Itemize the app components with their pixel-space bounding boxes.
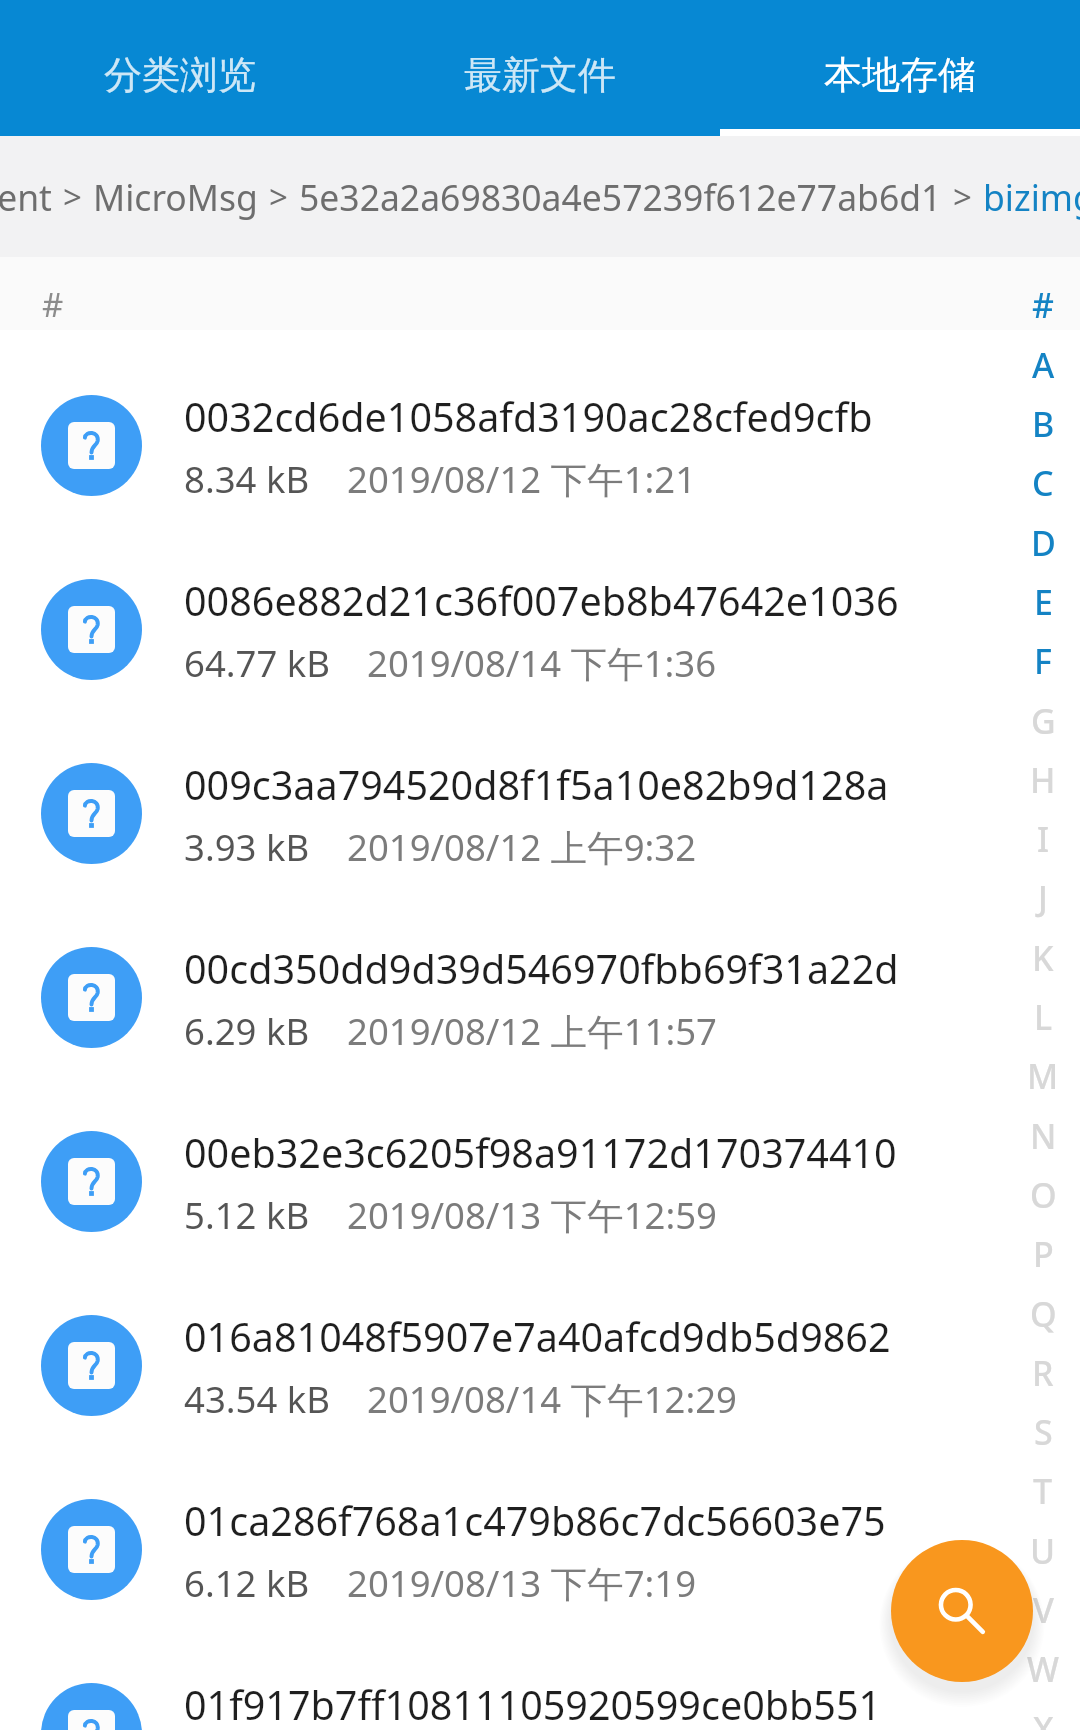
button[interactable]: L <box>1013 987 1073 1046</box>
staticText: B <box>1032 401 1055 447</box>
staticText: # <box>42 282 64 327</box>
staticText: > <box>953 174 972 219</box>
staticText: D <box>1031 520 1056 566</box>
staticText: 分类浏览 <box>104 51 256 99</box>
staticText: J <box>1038 875 1048 921</box>
button[interactable]: 01ca286f768a1c479b86c7dc56603e75 <box>0 1457 1080 1641</box>
button[interactable]: B <box>1013 394 1073 453</box>
button[interactable]: S <box>1013 1402 1073 1461</box>
staticText: 2019/08/13 下午7:19 <box>347 1558 697 1608</box>
staticText: M <box>1027 1053 1059 1099</box>
staticText: 5.12 kB <box>184 1190 310 1240</box>
button[interactable]: 00cd350dd9d39d546970fbb69f31a22d <box>0 905 1080 1089</box>
button[interactable]: T <box>1013 1461 1073 1520</box>
button[interactable]: X <box>1013 1699 1073 1730</box>
staticText: U <box>1030 1528 1056 1574</box>
button[interactable]: O <box>1013 1165 1073 1224</box>
button[interactable]: 01f917b7ff10811105920599ce0bb551 <box>0 1641 1080 1730</box>
staticText: V <box>1033 1587 1054 1633</box>
button[interactable]: 5e32a2a69830a4e57239f612e77ab6d1 <box>299 136 942 257</box>
button[interactable]: V <box>1013 1580 1073 1639</box>
staticText: 00cd350dd9d39d546970fbb69f31a22d <box>184 942 899 996</box>
staticText: H <box>1030 757 1056 803</box>
staticText: R <box>1032 1350 1054 1396</box>
staticText: Q <box>1030 1291 1057 1337</box>
staticText: > <box>269 174 288 219</box>
staticText: 2019/08/14 下午12:29 <box>367 1374 737 1424</box>
button[interactable]: J <box>1013 868 1073 927</box>
button[interactable]: 最新文件 <box>360 0 720 136</box>
staticText: C <box>1032 460 1054 506</box>
staticText: I <box>1037 816 1050 862</box>
button[interactable]: R <box>1013 1343 1073 1402</box>
staticText: 016a81048f5907e7a40afcd9db5d9862 <box>184 1310 891 1364</box>
staticText: W <box>1027 1646 1059 1692</box>
button[interactable]: C <box>1013 453 1073 512</box>
button[interactable]: # <box>1013 275 1073 334</box>
staticText: S <box>1034 1409 1053 1455</box>
staticText: 6.12 kB <box>184 1558 310 1608</box>
button[interactable]: P <box>1013 1224 1073 1283</box>
button[interactable]: 分类浏览 <box>0 0 360 136</box>
staticText: 8.34 kB <box>184 454 310 504</box>
staticText: 最新文件 <box>464 51 616 99</box>
staticText: G <box>1031 698 1056 744</box>
button[interactable]: E <box>1013 572 1073 631</box>
staticText: T <box>1033 1468 1053 1514</box>
button[interactable]: MicroMsg <box>93 136 258 257</box>
staticText: > <box>63 174 82 219</box>
button[interactable]: G <box>1013 691 1073 750</box>
button[interactable]: W <box>1013 1639 1073 1698</box>
button[interactable]: U <box>1013 1521 1073 1580</box>
staticText: O <box>1030 1172 1057 1218</box>
button[interactable]: 0032cd6de1058afd3190ac28cfed9cfb <box>0 353 1080 537</box>
staticText: N <box>1030 1113 1057 1159</box>
button[interactable]: F <box>1013 631 1073 690</box>
staticText: 5e32a2a69830a4e57239f612e77ab6d1 <box>299 173 942 221</box>
staticText: Recent <box>0 173 52 221</box>
button[interactable]: Q <box>1013 1284 1073 1343</box>
button[interactable]: I <box>1013 809 1073 868</box>
staticText: E <box>1034 579 1053 625</box>
staticText: 0032cd6de1058afd3190ac28cfed9cfb <box>184 390 873 444</box>
staticText: 2019/08/12 下午1:21 <box>347 454 697 504</box>
staticText: 2019/08/13 下午12:59 <box>347 1190 717 1240</box>
button[interactable]: 本地存储 <box>720 0 1080 136</box>
button[interactable]: K <box>1013 928 1073 987</box>
staticText: 2019/08/14 下午1:36 <box>367 638 717 688</box>
staticText: P <box>1033 1231 1054 1277</box>
staticText: 43.54 kB <box>184 1374 330 1424</box>
button[interactable]: bizimg <box>983 136 1080 257</box>
button[interactable]: 016a81048f5907e7a40afcd9db5d9862 <box>0 1273 1080 1457</box>
staticText: 2019/08/12 上午9:32 <box>347 822 697 872</box>
button[interactable]: Search <box>891 1540 1033 1682</box>
staticText: 01ca286f768a1c479b86c7dc56603e75 <box>184 1494 886 1548</box>
staticText: 3.93 kB <box>184 822 310 872</box>
staticText: bizimg <box>983 173 1080 221</box>
staticText: X <box>1033 1706 1054 1730</box>
button[interactable]: H <box>1013 750 1073 809</box>
button[interactable]: D <box>1013 513 1073 572</box>
button[interactable]: A <box>1013 335 1073 394</box>
staticText: A <box>1032 342 1055 388</box>
button[interactable]: 009c3aa794520d8f1f5a10e82b9d128a <box>0 721 1080 905</box>
staticText: 0086e882d21c36f007eb8b47642e1036 <box>184 574 899 628</box>
staticText: 6.29 kB <box>184 1006 310 1056</box>
staticText: L <box>1034 994 1053 1040</box>
staticText: K <box>1032 935 1054 981</box>
staticText: 2019/08/12 上午11:57 <box>347 1006 717 1056</box>
button[interactable]: Recent <box>0 136 52 257</box>
staticText: 009c3aa794520d8f1f5a10e82b9d128a <box>184 758 889 812</box>
staticText: 01f917b7ff10811105920599ce0bb551 <box>184 1678 882 1730</box>
staticText: MicroMsg <box>93 173 258 221</box>
button[interactable]: 00eb32e3c6205f98a91172d170374410 <box>0 1089 1080 1273</box>
button[interactable]: M <box>1013 1046 1073 1105</box>
button[interactable]: N <box>1013 1106 1073 1165</box>
staticText: 64.77 kB <box>184 638 330 688</box>
staticText: # <box>1032 282 1054 328</box>
staticText: 本地存储 <box>824 51 976 99</box>
button[interactable]: 0086e882d21c36f007eb8b47642e1036 <box>0 537 1080 721</box>
staticText: 00eb32e3c6205f98a91172d170374410 <box>184 1126 897 1180</box>
staticText: F <box>1034 638 1052 684</box>
